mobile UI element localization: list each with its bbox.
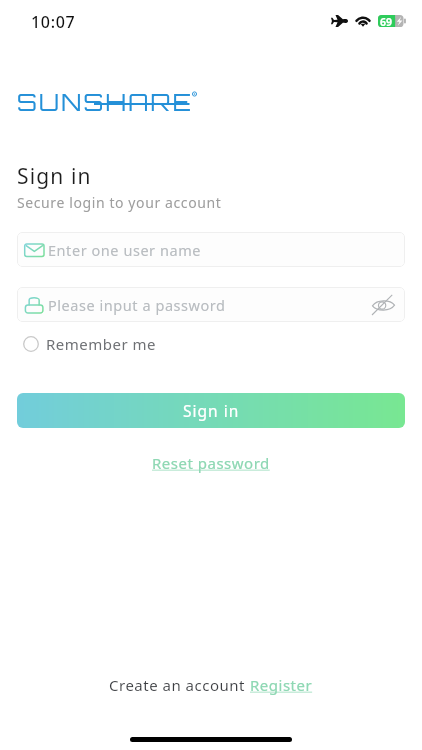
button[interactable]: Reset password [152,453,270,473]
staticText: Remember me [46,334,157,354]
button[interactable]: Sign in [17,393,405,428]
staticText: 69 [380,15,393,27]
staticText: Please input a password [48,295,226,315]
staticText: SUNSHARE [17,87,194,113]
staticText: Enter one user name [48,240,201,260]
button[interactable]: Remember me [17,331,157,357]
staticText: Sign in [183,400,240,421]
staticText: Create an account [109,675,250,695]
staticText: Sign in [17,162,92,191]
button[interactable]: Please input a password [17,287,405,322]
button[interactable]: Register [250,675,313,695]
staticText: Secure login to your account [17,193,222,212]
button[interactable]: Enter one user name [17,232,405,267]
button[interactable]: Show password [369,293,397,317]
staticText: 10:07 [31,11,76,33]
